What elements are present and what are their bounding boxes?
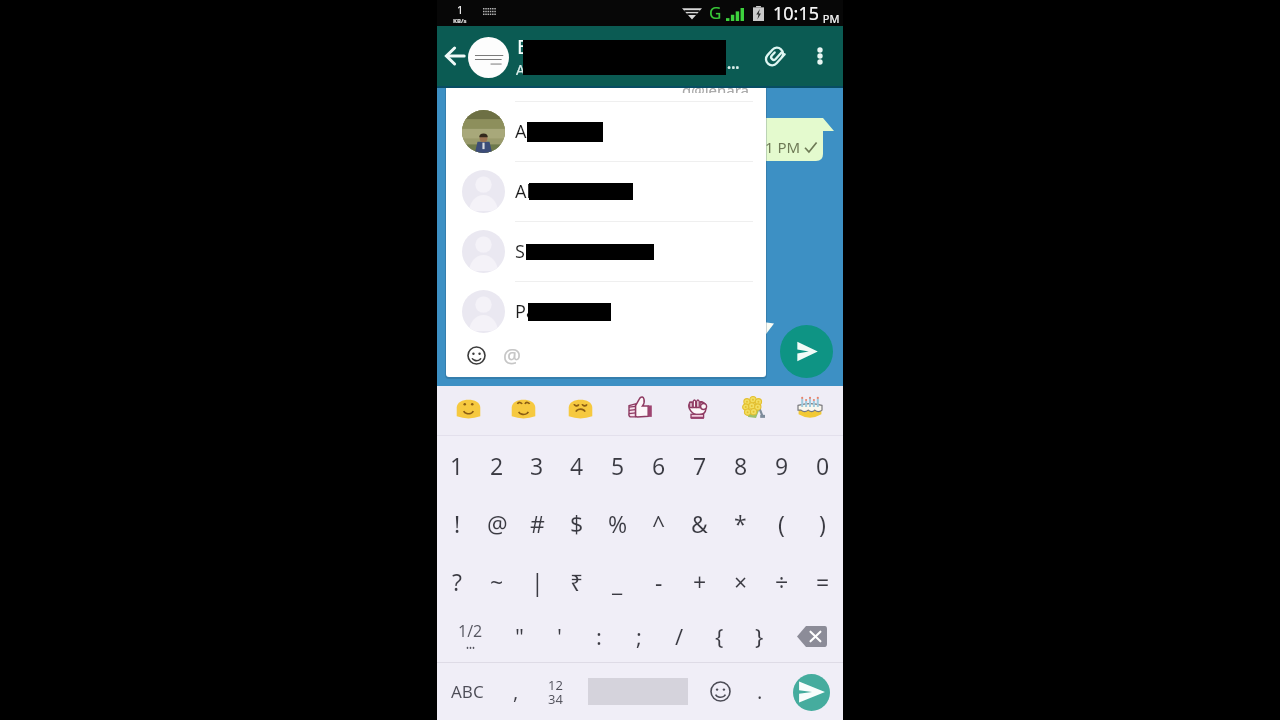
- staticText: G: [709, 1, 722, 24]
- button[interactable]: 2: [477, 436, 517, 494]
- button[interactable]: Attach: [756, 38, 792, 74]
- button[interactable]: Send: [780, 325, 833, 378]
- button[interactable]: /: [659, 610, 699, 662]
- button[interactable]: Thumbs up: [624, 390, 658, 424]
- button[interactable]: +: [679, 552, 720, 610]
- button[interactable]: Emoji: [699, 663, 742, 720]
- button[interactable]: Emoji: [563, 390, 597, 424]
- button[interactable]: #: [517, 494, 557, 552]
- button[interactable]: =: [802, 552, 843, 610]
- button[interactable]: 5: [597, 436, 638, 494]
- button[interactable]: ×: [720, 552, 761, 610]
- staticText: ,: [513, 678, 519, 705]
- button[interactable]: @: [477, 494, 517, 552]
- button[interactable]: Birthday cake: [793, 390, 827, 424]
- button[interactable]: A: [446, 102, 766, 161]
- button[interactable]: -: [638, 552, 679, 610]
- button[interactable]: ,: [498, 663, 534, 720]
- staticText: 8: [734, 450, 748, 481]
- button[interactable]: }: [739, 610, 779, 662]
- staticText: E: [517, 33, 529, 60]
- button[interactable]: ~: [477, 552, 517, 610]
- staticText: •••: [727, 60, 740, 75]
- button[interactable]: ÷: [761, 552, 802, 610]
- button[interactable]: Back: [437, 38, 473, 74]
- button[interactable]: Emoji: [461, 340, 491, 370]
- staticText: +: [693, 566, 707, 597]
- button[interactable]: 4: [557, 436, 597, 494]
- button[interactable]: 1: [437, 436, 477, 494]
- staticText: 1/2: [458, 620, 483, 642]
- button[interactable]: &: [679, 494, 720, 552]
- button[interactable]: ": [499, 610, 539, 662]
- button[interactable]: Emoji: [506, 390, 540, 424]
- staticText: S: [515, 239, 525, 264]
- button[interactable]: 9: [761, 436, 802, 494]
- staticText: @: [487, 508, 508, 539]
- staticText: ×: [734, 566, 748, 597]
- staticText: ": [515, 621, 524, 651]
- button[interactable]: {: [699, 610, 739, 662]
- staticText: Ak: [515, 179, 537, 204]
- staticText: ^: [652, 508, 666, 539]
- button[interactable]: S: [446, 222, 766, 281]
- button[interactable]: 1/2: [450, 610, 490, 662]
- staticText: 1: [457, 2, 464, 17]
- button[interactable]: .: [742, 663, 778, 720]
- button[interactable]: *: [720, 494, 761, 552]
- staticText: $: [570, 508, 584, 539]
- button[interactable]: 8: [720, 436, 761, 494]
- button[interactable]: Send: [778, 663, 843, 720]
- button[interactable]: ₹: [557, 552, 597, 610]
- button[interactable]: (: [761, 494, 802, 552]
- button[interactable]: More options: [802, 38, 838, 74]
- button[interactable]: Emoji: [451, 390, 485, 424]
- staticText: 12 34: [548, 676, 563, 708]
- button[interactable]: OK hand: [680, 390, 714, 424]
- staticText: Pa: [515, 299, 536, 324]
- button[interactable]: ;: [619, 610, 659, 662]
- button[interactable]: Pa: [446, 282, 766, 341]
- button[interactable]: |: [517, 552, 557, 610]
- button[interactable]: ': [539, 610, 579, 662]
- staticText: 0: [816, 450, 830, 481]
- staticText: 1: [450, 450, 464, 481]
- staticText: |: [531, 566, 544, 597]
- button[interactable]: Bouquet: [736, 390, 770, 424]
- button[interactable]: ^: [638, 494, 679, 552]
- staticText: 9: [775, 450, 789, 481]
- staticText: !: [454, 508, 461, 539]
- button[interactable]: 0: [802, 436, 843, 494]
- staticText: 7: [693, 450, 707, 481]
- button[interactable]: ): [802, 494, 843, 552]
- button[interactable]: Ak: [446, 162, 766, 221]
- button[interactable]: Backspace: [787, 610, 837, 662]
- button[interactable]: 6: [638, 436, 679, 494]
- button[interactable]: 12 34: [534, 663, 577, 720]
- staticText: -: [655, 566, 663, 597]
- staticText: ;: [636, 621, 642, 651]
- staticText: .: [757, 678, 763, 705]
- staticText: }: [755, 621, 764, 651]
- staticText: /: [675, 621, 684, 651]
- button[interactable]: Mention: [498, 341, 526, 369]
- button[interactable]: ABC: [437, 663, 498, 720]
- staticText: 4: [570, 450, 584, 481]
- button[interactable]: Space: [577, 663, 699, 720]
- staticText: :: [596, 621, 602, 651]
- staticText: PM: [820, 11, 840, 26]
- staticText: *: [734, 508, 747, 539]
- button[interactable]: %: [597, 494, 638, 552]
- button[interactable]: _: [597, 552, 638, 610]
- button[interactable]: 3: [517, 436, 557, 494]
- staticText: ABC: [451, 680, 484, 703]
- staticText: 6: [652, 450, 666, 481]
- staticText: %: [608, 508, 628, 539]
- button[interactable]: $: [557, 494, 597, 552]
- button[interactable]: ?: [437, 552, 477, 610]
- button[interactable]: !: [437, 494, 477, 552]
- button[interactable]: Profile photo: [468, 37, 509, 78]
- button[interactable]: 7: [679, 436, 720, 494]
- staticText: 1 PM: [765, 137, 801, 157]
- button[interactable]: :: [579, 610, 619, 662]
